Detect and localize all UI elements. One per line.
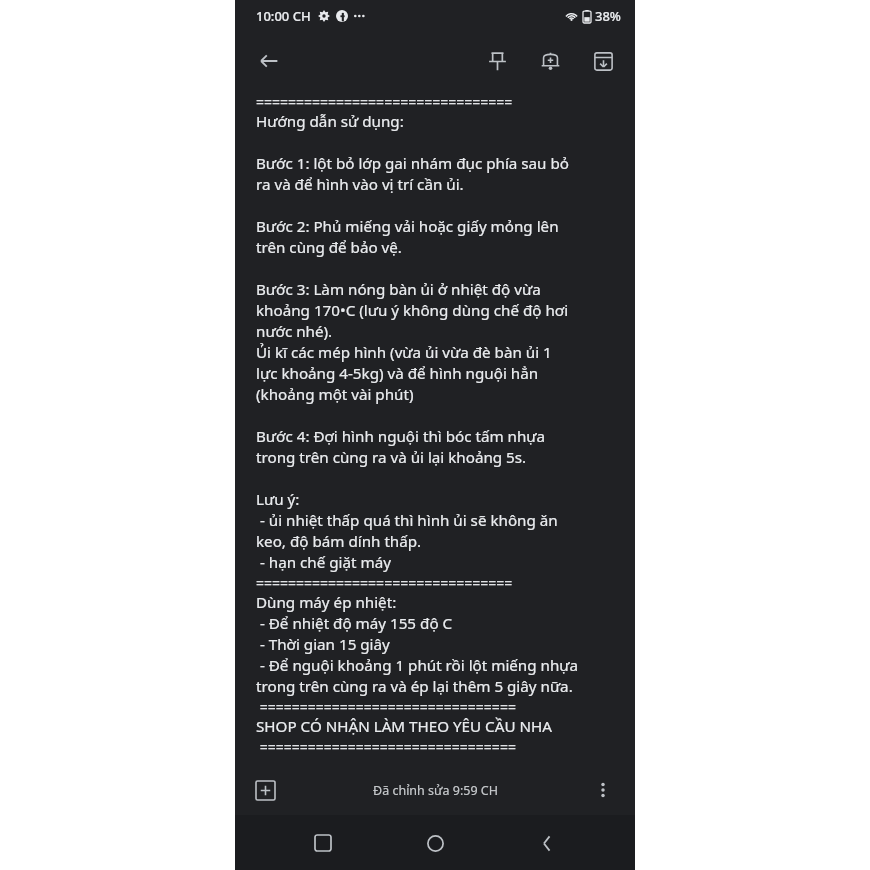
staticText: - hạn chế giặt máy <box>256 552 391 573</box>
staticText: SHOP CÓ NHẬN LÀM THEO YÊU CẦU NHA <box>256 716 552 737</box>
staticText: khoảng 170•C (lưu ý không dùng chế độ hơ… <box>256 300 569 321</box>
button[interactable]: Pin note <box>475 39 519 83</box>
staticText: ra và để hình vào vị trí cần ủi. <box>256 174 464 195</box>
button[interactable]: Archive <box>581 39 625 83</box>
staticText: Lưu ý: <box>256 489 300 510</box>
staticText: 10:00 CH <box>256 7 311 25</box>
staticText: - ủi nhiệt thấp quá thì hình ủi sẽ không… <box>256 510 558 531</box>
staticText: Bước 2: Phủ miếng vải hoặc giấy mỏng lên <box>256 216 559 237</box>
staticText: trong trên cùng ra và ép lại thêm 5 giây… <box>256 676 573 697</box>
staticText: lực khoảng 4-5kg) và để hình nguội hẳn <box>256 363 539 384</box>
staticText: (khoảng một vài phút) <box>256 384 414 405</box>
staticText: Bước 3: Làm nóng bàn ủi ở nhiệt độ vừa <box>256 279 541 300</box>
staticText: ================================ <box>256 573 513 592</box>
staticText: trong trên cùng ra và ủi lại khoảng 5s. <box>256 447 527 468</box>
staticText: keo, độ bám dính thấp. <box>256 531 422 552</box>
staticText: 38% <box>595 7 621 25</box>
staticText: ================================ <box>256 697 516 716</box>
button[interactable]: Back <box>247 39 291 83</box>
staticText: - Để nguội khoảng 1 phút rồi lột miếng n… <box>256 655 579 676</box>
button[interactable]: Back <box>523 819 571 867</box>
staticText: - Thời gian 15 giây <box>256 634 390 655</box>
staticText: ================================ <box>256 737 516 756</box>
button[interactable]: Recents <box>299 819 347 867</box>
staticText: Dùng máy ép nhiệt: <box>256 592 397 613</box>
staticText: trên cùng để bảo vệ. <box>256 237 402 258</box>
button[interactable]: More options <box>583 770 623 810</box>
staticText: ================================ <box>256 92 513 111</box>
button[interactable]: ================================ <box>256 92 621 765</box>
button[interactable]: Home <box>411 819 459 867</box>
staticText: Ủi kĩ các mép hình (vừa ủi vừa đè bàn ủi… <box>256 342 552 363</box>
staticText: Hướng dẫn sử dụng: <box>256 111 404 132</box>
button[interactable]: Add item <box>245 770 285 810</box>
staticText: Bước 4: Đợi hình nguội thì bóc tấm nhựa <box>256 426 546 447</box>
staticText: Bước 1: lột bỏ lớp gai nhám đục phía sau… <box>256 153 569 174</box>
staticText: - Để nhiệt độ máy 155 độ C <box>256 613 453 634</box>
staticText: Đã chỉnh sửa 9:59 CH <box>373 782 498 799</box>
staticText: nước nhé). <box>256 321 333 342</box>
button[interactable]: Add reminder <box>528 39 572 83</box>
